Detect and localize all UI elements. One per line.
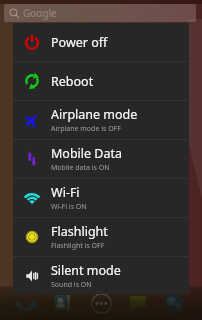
staticText: Flashlight bbox=[51, 223, 108, 240]
staticText: Wi-Fi bbox=[51, 184, 80, 201]
staticText: Google bbox=[23, 6, 57, 20]
button[interactable]: Airplane mode bbox=[13, 101, 189, 139]
button[interactable]: Flashlight bbox=[13, 218, 189, 256]
button[interactable]: Reboot bbox=[13, 62, 189, 100]
button[interactable]: Browser bbox=[164, 294, 184, 314]
button[interactable]: Silent mode bbox=[13, 257, 189, 294]
staticText: Mobile data is ON bbox=[51, 163, 110, 173]
button[interactable]: Wi-Fi bbox=[13, 179, 189, 217]
button[interactable]: Apps bbox=[91, 293, 112, 314]
staticText: Flashlight is OFF bbox=[51, 241, 105, 251]
staticText: Airplane mode is OFF bbox=[51, 124, 121, 134]
button[interactable]: Phone bbox=[13, 292, 37, 316]
button[interactable]: Contacts bbox=[53, 295, 71, 313]
staticText: Airplane mode bbox=[51, 106, 138, 123]
button[interactable]: Search bbox=[4, 4, 196, 22]
staticText: Silent mode bbox=[51, 262, 121, 279]
staticText: Mobile Data bbox=[51, 145, 123, 162]
button[interactable]: Mobile Data bbox=[13, 140, 189, 178]
other: Search bbox=[9, 8, 20, 19]
staticText: Reboot bbox=[51, 73, 94, 90]
button[interactable]: Power off bbox=[13, 23, 189, 61]
staticText: Power off bbox=[51, 34, 108, 51]
staticText: Wi-Fi is ON bbox=[51, 202, 87, 212]
button[interactable]: Messaging bbox=[129, 295, 147, 313]
staticText: Sound is ON bbox=[51, 280, 92, 290]
